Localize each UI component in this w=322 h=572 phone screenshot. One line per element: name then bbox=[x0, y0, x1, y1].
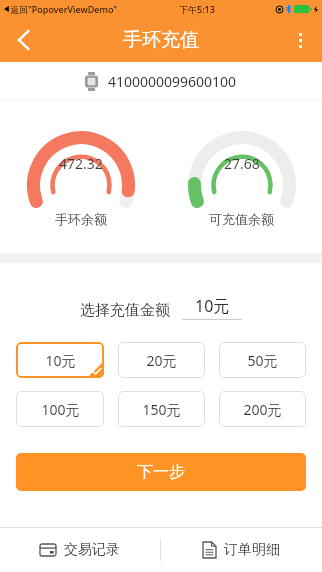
button[interactable]: 20元 bbox=[118, 342, 205, 378]
button[interactable]: More options bbox=[278, 18, 322, 62]
button[interactable]: 200元 bbox=[219, 391, 306, 427]
button[interactable]: 150元 bbox=[118, 391, 205, 427]
button[interactable]: 50元 bbox=[219, 342, 306, 378]
staticText: 下一步 bbox=[137, 462, 185, 482]
button[interactable]: 交易记录 bbox=[0, 528, 160, 572]
staticText: 可充值余额 bbox=[209, 211, 274, 227]
staticText: 返回"PopoverViewDemo" bbox=[10, 3, 118, 15]
button[interactable]: 100元 bbox=[16, 391, 104, 427]
button[interactable]: Back bbox=[0, 18, 48, 62]
staticText: 下午5:13 bbox=[179, 3, 215, 15]
button[interactable]: 10元 bbox=[16, 342, 104, 378]
staticText: 交易记录 bbox=[64, 541, 120, 559]
staticText: 100元 bbox=[41, 400, 80, 419]
staticText: 10元 bbox=[195, 295, 230, 317]
staticText: 20元 bbox=[146, 351, 177, 370]
staticText: 200元 bbox=[243, 400, 282, 419]
staticText: 订单明细 bbox=[224, 541, 280, 559]
staticText: 10元 bbox=[45, 351, 76, 370]
staticText: 手环充值 bbox=[123, 28, 199, 52]
staticText: 150元 bbox=[142, 400, 181, 419]
button[interactable]: 订单明细 bbox=[161, 528, 322, 572]
staticText: 4100000099600100 bbox=[108, 72, 237, 91]
staticText: 手环余额 bbox=[55, 211, 107, 227]
button[interactable]: 下一步 bbox=[16, 453, 306, 491]
staticText: 50元 bbox=[247, 351, 278, 370]
staticText: 27.68 bbox=[224, 154, 260, 173]
staticText: 选择充值金额 bbox=[80, 301, 170, 320]
staticText: 472.32 bbox=[59, 154, 103, 173]
